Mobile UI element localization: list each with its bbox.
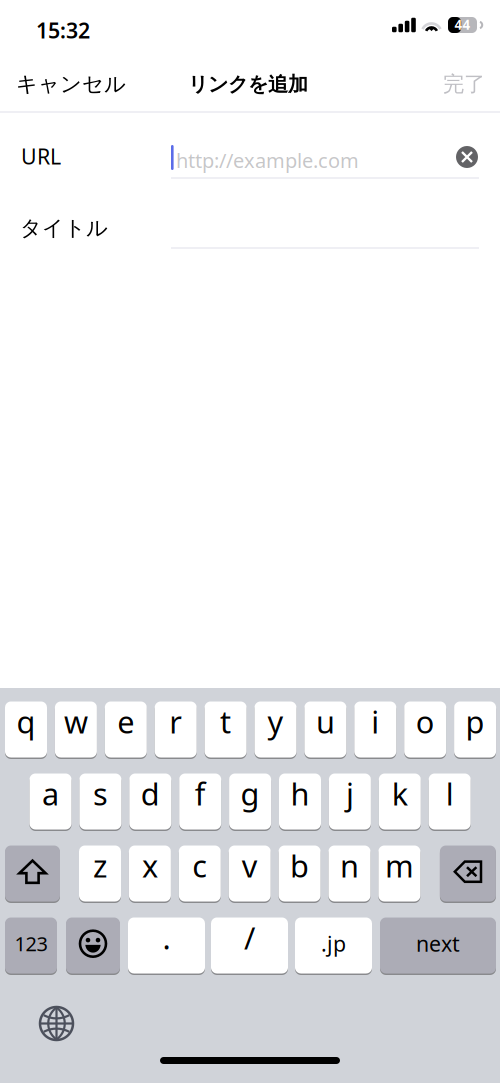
button[interactable]: q	[5, 700, 47, 759]
staticText: v	[242, 845, 258, 886]
button[interactable]: j	[329, 772, 371, 831]
staticText: a	[42, 773, 59, 814]
button[interactable]: f	[179, 772, 221, 831]
button[interactable]: c	[179, 844, 221, 903]
button[interactable]: Delete	[440, 844, 496, 903]
staticText: m	[385, 845, 414, 886]
button[interactable]: g	[229, 772, 271, 831]
staticText: next	[416, 929, 460, 958]
staticText: URL	[21, 142, 61, 170]
staticText: .jp	[321, 929, 346, 958]
button[interactable]: m	[378, 844, 420, 903]
staticText: p	[466, 701, 485, 742]
staticText: d	[141, 773, 160, 814]
button[interactable]: w	[55, 700, 97, 759]
staticText: r	[169, 701, 182, 742]
button[interactable]: v	[229, 844, 271, 903]
button[interactable]: Shift	[5, 844, 60, 903]
staticText: リンクを追加	[188, 72, 308, 97]
staticText: w	[64, 701, 88, 742]
button[interactable]: d	[129, 772, 171, 831]
staticText: /	[244, 917, 255, 958]
staticText: o	[416, 701, 435, 742]
staticText: f	[195, 773, 206, 814]
staticText: x	[142, 845, 158, 886]
button[interactable]: e	[105, 700, 147, 759]
staticText: タイトル	[20, 215, 108, 241]
staticText: 完了	[443, 71, 485, 97]
button[interactable]: i	[354, 700, 396, 759]
staticText: z	[93, 845, 107, 886]
staticText: c	[192, 845, 207, 886]
button[interactable]: h	[279, 772, 321, 831]
button[interactable]: b	[279, 844, 321, 903]
staticText: 44	[454, 16, 470, 33]
button[interactable]: next	[380, 916, 496, 975]
button[interactable]: キャンセル	[0, 57, 144, 111]
staticText: j	[346, 773, 354, 814]
staticText: h	[290, 773, 309, 814]
button[interactable]: .jp	[295, 916, 372, 975]
staticText: 123	[14, 930, 47, 957]
button[interactable]: o	[404, 700, 446, 759]
staticText: g	[241, 773, 260, 814]
button[interactable]: y	[254, 700, 296, 759]
button[interactable]: /	[211, 916, 288, 975]
button[interactable]: r	[155, 700, 197, 759]
staticText: n	[340, 845, 359, 886]
button[interactable]: x	[129, 844, 171, 903]
button[interactable]: t	[205, 700, 247, 759]
button[interactable]: p	[454, 700, 496, 759]
staticText: i	[371, 701, 379, 742]
staticText: 15:32	[36, 16, 90, 44]
button[interactable]: a	[29, 772, 71, 831]
button[interactable]: l	[429, 772, 471, 831]
staticText: s	[93, 773, 108, 814]
staticText: k	[392, 773, 408, 814]
button[interactable]: Clear text	[450, 140, 484, 174]
staticText: e	[117, 701, 134, 742]
staticText: .	[162, 917, 170, 958]
button[interactable]: .	[128, 916, 205, 975]
staticText: y	[267, 701, 283, 742]
staticText: l	[446, 773, 454, 814]
staticText: キャンセル	[16, 71, 126, 97]
staticText: b	[290, 845, 309, 886]
button[interactable]: Switch keyboard	[39, 1006, 74, 1041]
button[interactable]: 完了	[425, 57, 500, 111]
staticText: q	[16, 701, 35, 742]
button[interactable]: k	[379, 772, 421, 831]
staticText: t	[220, 701, 231, 742]
staticText: http://example.com	[176, 147, 359, 174]
button[interactable]: リンクを追加	[180, 57, 316, 112]
button[interactable]: z	[79, 844, 121, 903]
button[interactable]: s	[79, 772, 121, 831]
button[interactable]: Emoji	[66, 916, 120, 975]
staticText: u	[316, 701, 335, 742]
button[interactable]: 123	[5, 916, 57, 975]
button[interactable]: n	[328, 844, 370, 903]
button[interactable]: u	[304, 700, 346, 759]
